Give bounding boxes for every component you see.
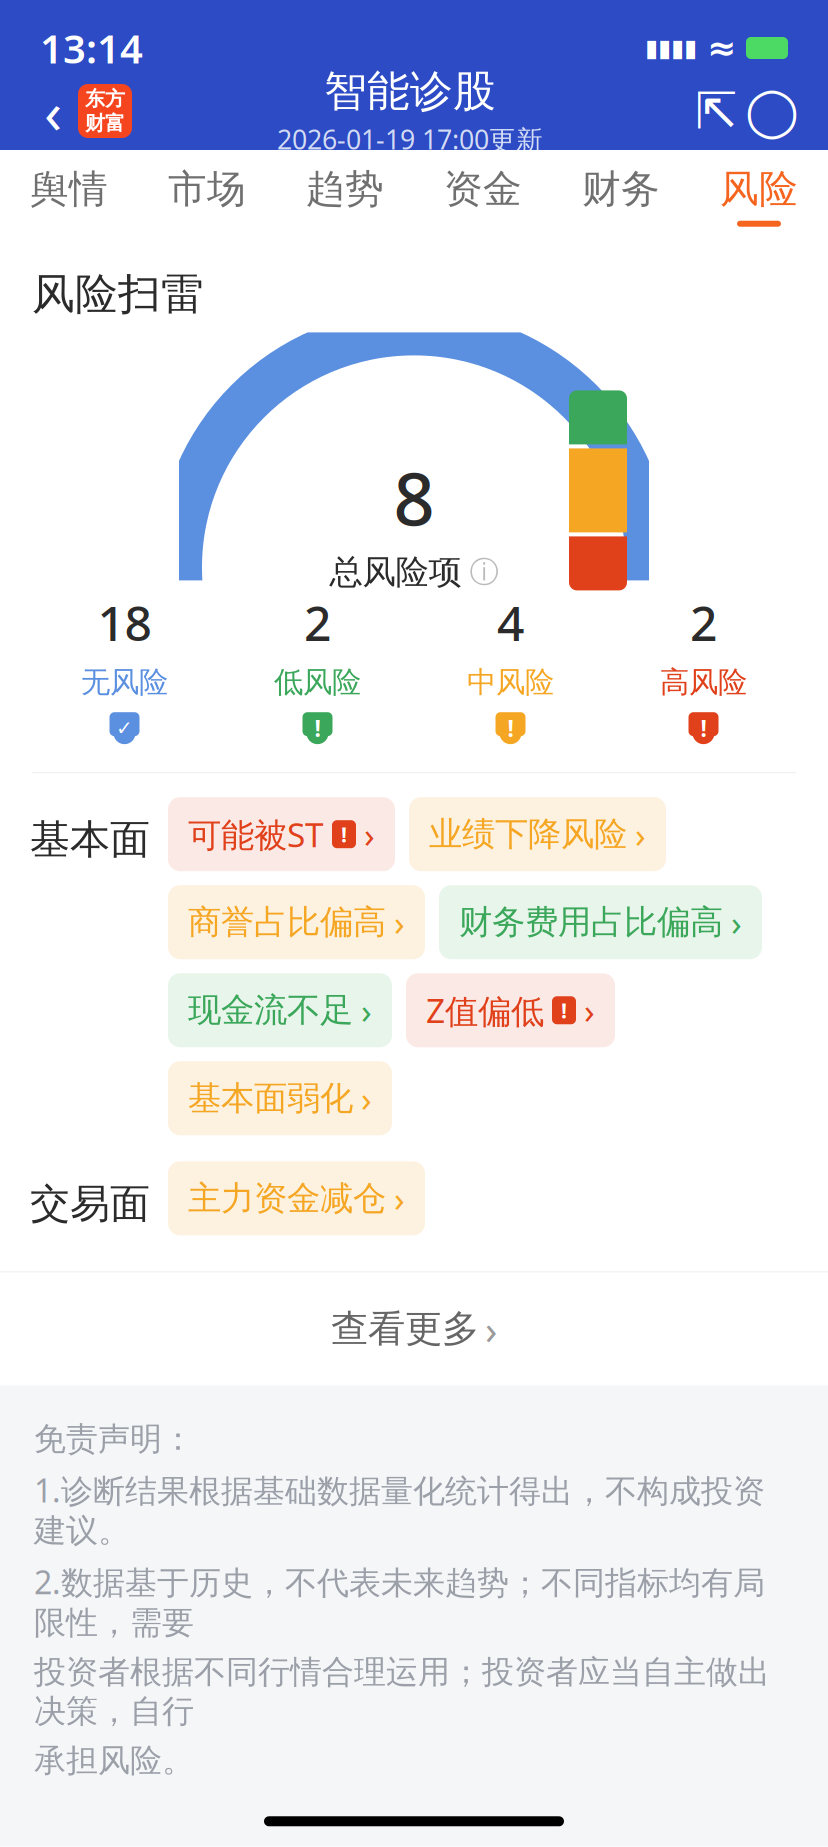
- staticText: ›: [584, 987, 595, 1033]
- staticText: ⓘ: [469, 554, 498, 590]
- staticText: Z值偏低: [426, 988, 544, 1032]
- button[interactable]: 查看更多: [0, 1272, 828, 1385]
- staticText: ✓: [116, 717, 133, 739]
- staticText: 业绩下降风险: [429, 814, 627, 855]
- staticText: ▮▮▮▮: [645, 34, 697, 62]
- staticText: 4: [497, 590, 524, 654]
- staticText: 智能诊股: [324, 65, 496, 117]
- staticText: 基本面: [30, 815, 150, 864]
- button[interactable]: Back: [28, 81, 78, 141]
- staticText: 无风险: [81, 664, 168, 700]
- staticText: ›: [394, 1175, 405, 1221]
- staticText: ›: [731, 899, 742, 945]
- staticText: 资金: [444, 165, 522, 213]
- staticText: 财务费用占比偏高: [459, 902, 723, 943]
- staticText: 2026-01-19 17:00更新: [277, 121, 543, 157]
- staticText: ‹: [44, 72, 62, 150]
- staticText: 市场: [168, 165, 246, 213]
- button[interactable]: 可能被ST: [168, 797, 395, 871]
- staticText: 现金流不足: [188, 990, 353, 1031]
- button[interactable]: 财务费用占比偏高: [439, 885, 762, 959]
- staticText: 18: [97, 590, 151, 654]
- staticText: ›: [635, 811, 646, 857]
- staticText: 2: [690, 590, 717, 654]
- staticText: 主力资金减仓: [188, 1178, 386, 1219]
- button[interactable]: 业绩下降风险: [409, 797, 666, 871]
- staticText: 财富: [85, 111, 125, 136]
- staticText: 查看更多: [331, 1306, 479, 1352]
- staticText: 中风险: [467, 664, 554, 700]
- staticText: 投资者根据不同行情合理运用；投资者应当自主做出决策，自行: [34, 1652, 770, 1731]
- button[interactable]: Z值偏低: [406, 973, 615, 1047]
- staticText: ⇱: [695, 82, 737, 140]
- staticText: 基本面弱化: [188, 1078, 353, 1119]
- button[interactable]: Search: [744, 81, 800, 141]
- button[interactable]: 财务: [552, 151, 690, 241]
- staticText: 可能被ST: [188, 812, 324, 856]
- button[interactable]: 商誉占比偏高: [168, 885, 425, 959]
- staticText: ›: [485, 1302, 497, 1355]
- staticText: 商誉占比偏高: [188, 902, 386, 943]
- staticText: !: [700, 713, 706, 743]
- button[interactable]: 市场: [138, 151, 276, 241]
- button[interactable]: 舆情: [0, 151, 138, 241]
- staticText: 趋势: [306, 165, 384, 213]
- staticText: ›: [364, 811, 375, 857]
- staticText: 2.数据基于历史，不代表未来趋势；不同指标均有局限性，需要: [34, 1561, 765, 1642]
- staticText: !: [561, 996, 567, 1024]
- staticText: ›: [361, 1075, 372, 1121]
- staticText: 舆情: [30, 165, 108, 213]
- staticText: 13:14: [40, 21, 143, 74]
- button[interactable]: 趋势: [276, 151, 414, 241]
- staticText: !: [341, 820, 347, 848]
- button[interactable]: 风险: [690, 151, 828, 241]
- staticText: 1.诊断结果根据基础数据量化统计得出，不构成投资建议。: [34, 1469, 765, 1551]
- staticText: 风险扫雷: [32, 268, 204, 320]
- button[interactable]: 主力资金减仓: [168, 1161, 425, 1235]
- staticText: 财务: [582, 165, 660, 213]
- staticText: 风险: [720, 165, 798, 213]
- staticText: 低风险: [274, 664, 361, 700]
- staticText: 免责声明：: [34, 1419, 194, 1459]
- staticText: !: [507, 713, 513, 743]
- button[interactable]: 东方财富: [78, 84, 132, 138]
- staticText: ◯: [745, 84, 799, 138]
- staticText: 东方: [85, 86, 125, 111]
- staticText: 总风险项: [329, 552, 461, 593]
- staticText: 8: [393, 450, 434, 546]
- button[interactable]: 现金流不足: [168, 973, 392, 1047]
- staticText: 2: [304, 590, 331, 654]
- staticText: ›: [394, 899, 405, 945]
- button[interactable]: 基本面弱化: [168, 1061, 392, 1135]
- button[interactable]: Share: [688, 81, 744, 141]
- staticText: ›: [361, 987, 372, 1033]
- staticText: 交易面: [30, 1179, 150, 1228]
- staticText: !: [314, 713, 320, 743]
- staticText: ≈: [707, 28, 736, 68]
- staticText: 承担风险。: [34, 1741, 194, 1780]
- button[interactable]: 资金: [414, 151, 552, 241]
- staticText: 高风险: [660, 664, 747, 700]
